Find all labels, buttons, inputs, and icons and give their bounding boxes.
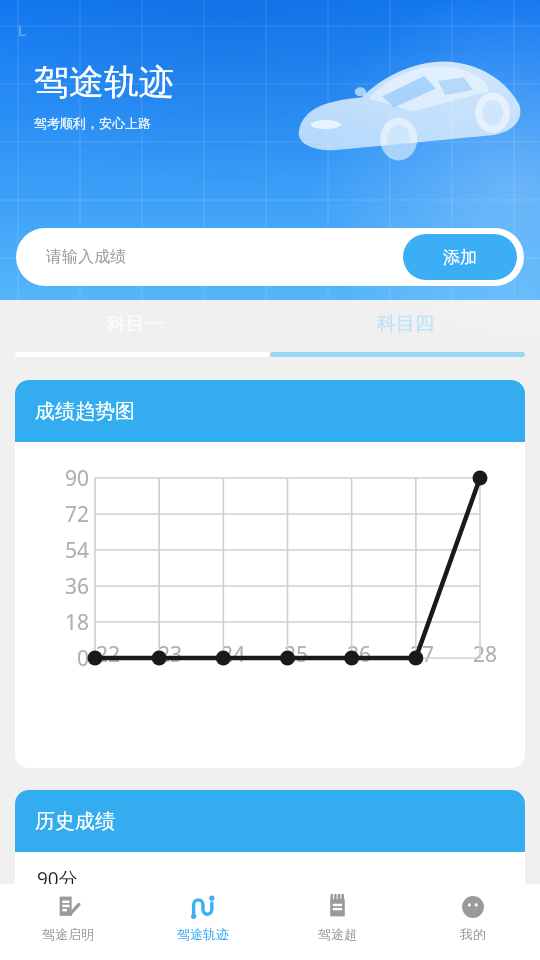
staticText: 54 [64, 536, 89, 565]
staticText: 28 [473, 640, 498, 669]
staticText: 驾途启明 [42, 926, 94, 942]
staticText: 驾途轨迹 [34, 60, 174, 104]
staticText: 科目四 [377, 312, 434, 336]
staticText: 27 [410, 640, 435, 669]
staticText: 90分 [37, 866, 78, 892]
other: 驾途轨迹 [190, 894, 216, 920]
staticText: 18 [64, 608, 89, 637]
staticText: 36 [64, 572, 89, 601]
button[interactable]: 驾途轨迹 [135, 884, 270, 960]
staticText: 驾考顺利，安心上路 [34, 115, 151, 131]
staticText: 成绩趋势图 [35, 399, 135, 424]
button[interactable]: 添加 [403, 234, 517, 280]
staticText: 历史成绩 [35, 809, 115, 834]
button[interactable]: 驾途超 [270, 884, 405, 960]
other: 我的 [460, 894, 486, 920]
button[interactable]: 科目四 [270, 302, 540, 346]
staticText: 25 [284, 640, 309, 669]
staticText: 24 [221, 640, 246, 669]
staticText: 驾途轨迹 [177, 926, 229, 942]
staticText: 22 [96, 640, 121, 669]
other: 驾途启明 [55, 894, 81, 920]
staticText: 72 [64, 500, 89, 529]
button[interactable]: 驾途启明 [0, 884, 135, 960]
staticText: 科目一 [107, 312, 164, 336]
other: 驾途超 [325, 894, 351, 920]
staticText: 90 [64, 464, 89, 493]
staticText: 驾途超 [318, 926, 357, 942]
button[interactable]: 请输入成绩 [16, 228, 403, 286]
staticText: 26 [347, 640, 372, 669]
staticText: 23 [158, 640, 183, 669]
button[interactable]: 成绩趋势图 [15, 380, 525, 768]
staticText: 添加 [443, 247, 477, 268]
button[interactable]: 历史成绩 [15, 790, 525, 940]
staticText: L [18, 20, 26, 40]
button[interactable]: 我的 [405, 884, 540, 960]
staticText: 0 [76, 644, 89, 673]
staticText: 我的 [460, 926, 486, 942]
staticText: 请输入成绩 [46, 247, 126, 267]
